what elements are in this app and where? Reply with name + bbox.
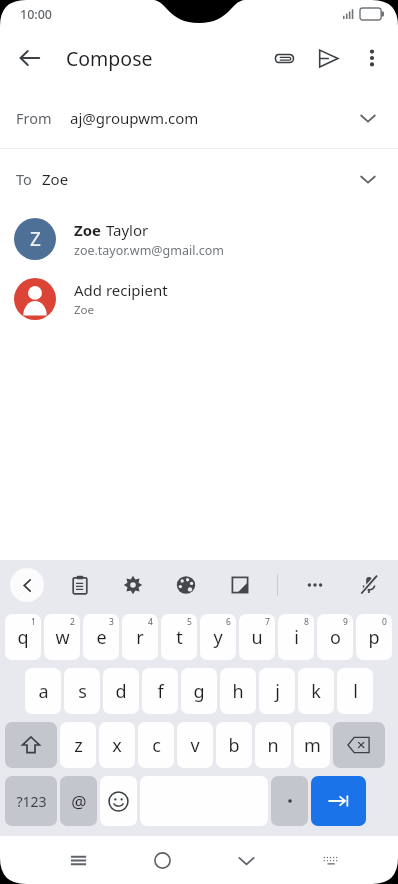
button[interactable]: Shift xyxy=(5,722,57,768)
button[interactable]: Themes xyxy=(169,568,203,602)
staticText: g xyxy=(193,679,205,704)
button[interactable]: r xyxy=(122,614,158,660)
button[interactable]: v xyxy=(177,722,213,768)
button[interactable]: Recent apps xyxy=(58,840,98,880)
button[interactable]: Expand To xyxy=(348,159,388,199)
staticText: n xyxy=(267,733,279,758)
staticText: t xyxy=(176,625,183,650)
button[interactable]: Home xyxy=(142,840,182,880)
button[interactable]: c xyxy=(138,722,174,768)
staticText: 9 xyxy=(343,616,348,628)
staticText: 10:00 xyxy=(20,6,53,23)
staticText: From xyxy=(16,108,52,128)
button[interactable]: z xyxy=(60,722,96,768)
staticText: h xyxy=(232,679,244,704)
staticText: e xyxy=(96,625,107,650)
staticText: aj@groupwm.com xyxy=(70,108,199,128)
staticText: 4 xyxy=(148,616,153,628)
button[interactable]: More xyxy=(298,568,332,602)
button[interactable]: Voice input off xyxy=(352,568,386,602)
staticText: c xyxy=(152,733,161,758)
staticText: ?123 xyxy=(16,792,47,811)
button[interactable]: Add recipient xyxy=(0,269,398,329)
staticText: a xyxy=(38,679,49,704)
button[interactable]: Settings xyxy=(116,568,150,602)
button[interactable]: Clipboard xyxy=(63,568,97,602)
button[interactable]: k xyxy=(298,668,334,714)
button[interactable]: Attach file xyxy=(262,36,306,80)
button[interactable]: Emoji xyxy=(100,776,137,826)
button[interactable]: ?123 xyxy=(5,776,57,826)
staticText: 5 xyxy=(187,616,192,628)
staticText: zoe.tayor.wm@gmail.com xyxy=(74,242,225,259)
button[interactable]: Backspace xyxy=(333,722,385,768)
button[interactable]: Previous xyxy=(10,568,44,602)
button[interactable]: x xyxy=(99,722,135,768)
staticText: 3 xyxy=(109,616,114,628)
button[interactable]: From xyxy=(0,88,398,148)
staticText: Add recipient xyxy=(74,280,168,300)
button[interactable]: f xyxy=(142,668,178,714)
staticText: j xyxy=(275,679,280,704)
button[interactable]: Send xyxy=(306,36,350,80)
button[interactable]: More options xyxy=(350,36,394,80)
staticText: p xyxy=(368,625,380,650)
staticText: r xyxy=(136,625,144,650)
button[interactable]: Resize xyxy=(223,568,257,602)
staticText: d xyxy=(115,679,127,704)
button[interactable]: j xyxy=(259,668,295,714)
staticText: 7 xyxy=(265,616,270,628)
staticText: x xyxy=(112,733,122,758)
button[interactable]: o xyxy=(317,614,353,660)
button[interactable]: Switch keyboard xyxy=(310,840,350,880)
staticText: k xyxy=(311,679,321,704)
button[interactable]: l xyxy=(337,668,373,714)
button[interactable]: @ xyxy=(60,776,97,826)
button[interactable]: i xyxy=(278,614,314,660)
button[interactable]: Hide keyboard xyxy=(226,840,266,880)
staticText: m xyxy=(304,733,321,758)
staticText: q xyxy=(17,625,29,650)
staticText: Z xyxy=(30,226,41,252)
staticText: v xyxy=(190,733,200,758)
staticText: Zoe xyxy=(74,302,95,318)
staticText: f xyxy=(157,679,164,704)
staticText: u xyxy=(251,625,263,650)
staticText: 2 xyxy=(70,616,75,628)
button[interactable]: m xyxy=(294,722,330,768)
staticText: 0 xyxy=(382,616,387,628)
staticText: b xyxy=(228,733,240,758)
staticText: z xyxy=(74,733,83,758)
button[interactable]: u xyxy=(239,614,275,660)
button[interactable]: Back xyxy=(6,34,54,82)
button[interactable]: g xyxy=(181,668,217,714)
button[interactable]: t xyxy=(161,614,197,660)
staticText: Zoe xyxy=(74,220,102,240)
button[interactable]: Z xyxy=(0,209,398,269)
staticText: 6 xyxy=(226,616,231,628)
button[interactable]: h xyxy=(220,668,256,714)
staticText: 8 xyxy=(304,616,309,628)
button[interactable]: q xyxy=(5,614,41,660)
button[interactable]: b xyxy=(216,722,252,768)
button[interactable]: d xyxy=(103,668,139,714)
button[interactable]: a xyxy=(25,668,61,714)
staticText: y xyxy=(213,625,223,650)
button[interactable]: p xyxy=(356,614,392,660)
staticText: Compose xyxy=(66,45,153,72)
staticText: Taylor xyxy=(102,220,149,240)
button[interactable]: Period xyxy=(271,776,308,826)
button[interactable]: s xyxy=(64,668,100,714)
button[interactable]: Expand From xyxy=(348,98,388,138)
button[interactable]: To xyxy=(0,149,398,209)
staticText: 1 xyxy=(31,616,36,628)
staticText: To xyxy=(16,169,32,189)
button[interactable]: Enter xyxy=(311,776,366,826)
button[interactable]: n xyxy=(255,722,291,768)
button[interactable]: y xyxy=(200,614,236,660)
staticText: o xyxy=(330,625,341,650)
button[interactable]: w xyxy=(44,614,80,660)
button[interactable]: e xyxy=(83,614,119,660)
staticText: l xyxy=(353,679,358,704)
